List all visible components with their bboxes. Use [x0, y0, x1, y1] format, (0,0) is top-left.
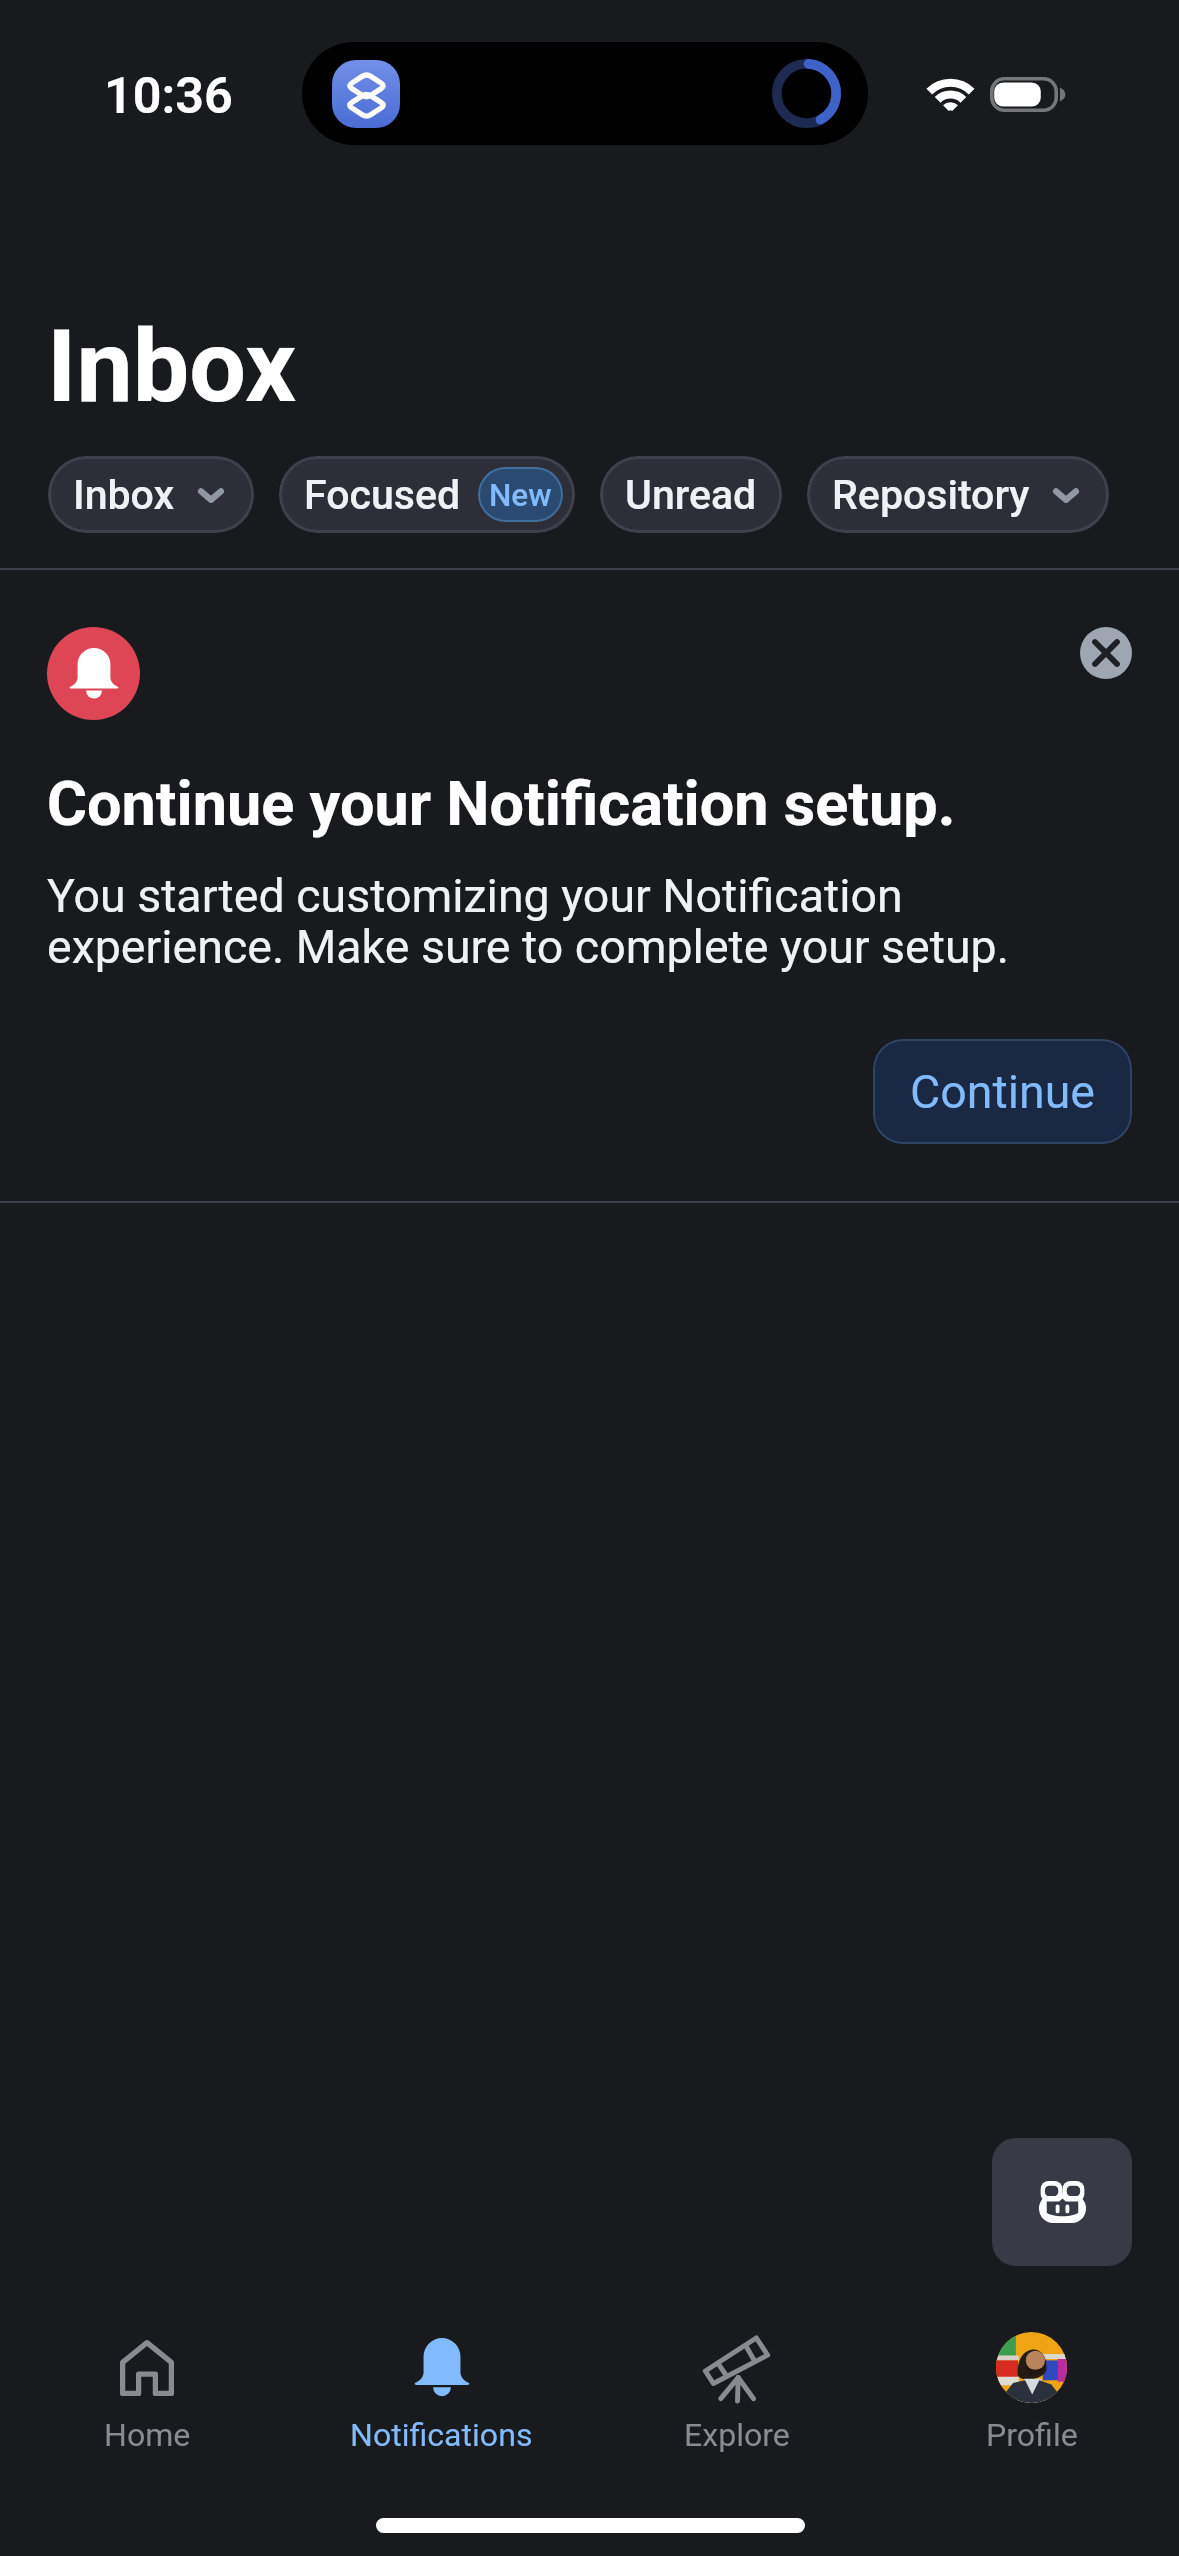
button[interactable]: Inbox	[48, 456, 254, 533]
button[interactable]: Repository	[807, 456, 1109, 533]
button[interactable]: Profile	[884, 2332, 1179, 2454]
button[interactable]: Notifications	[294, 2332, 589, 2454]
staticText: Notifications	[350, 2416, 533, 2454]
staticText: Inbox	[47, 311, 297, 425]
staticText: Continue	[910, 1065, 1095, 1119]
staticText: You started customizing your Notificatio…	[47, 872, 1132, 974]
button[interactable]: Explore	[589, 2332, 884, 2454]
button[interactable]: Copilot	[992, 2138, 1132, 2266]
staticText: New	[489, 475, 552, 514]
button[interactable]: Home	[0, 2332, 294, 2454]
staticText: Home	[104, 2416, 191, 2454]
staticText: Inbox	[73, 471, 175, 519]
button[interactable]: Dismiss	[1080, 627, 1132, 679]
staticText: Focused	[304, 471, 461, 519]
staticText: Explore	[684, 2416, 790, 2454]
staticText: Repository	[832, 471, 1030, 519]
staticText: Continue your Notification setup.	[47, 768, 956, 840]
button[interactable]: Focused	[279, 456, 575, 533]
staticText: Unread	[625, 471, 757, 519]
button[interactable]: Continue	[873, 1039, 1132, 1144]
staticText: Profile	[986, 2416, 1078, 2454]
button[interactable]: Unread	[600, 456, 782, 533]
staticText: 10:36	[104, 65, 233, 125]
